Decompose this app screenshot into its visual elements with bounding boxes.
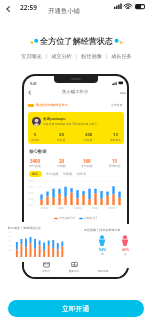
staticText: 支付金额 — [29, 164, 41, 168]
button[interactable]: 工作台 — [42, 261, 50, 272]
staticText: 9:41 — [30, 81, 37, 86]
staticText: 我的店铺 — [98, 269, 109, 272]
staticText: 待发货 — [57, 138, 66, 141]
button[interactable]: 成长任务 — [111, 53, 132, 60]
button[interactable]: Back — [1, 2, 15, 16]
staticText: 退款售后 — [110, 138, 121, 141]
button[interactable]: 概览 — [29, 171, 42, 177]
staticText: 20 — [59, 132, 64, 138]
staticText: 鱼小铺工作台 — [62, 89, 89, 95]
staticText: 工作台 — [42, 269, 50, 272]
staticText: 22:59 — [20, 3, 37, 12]
staticText: 新增粉丝 — [109, 164, 121, 168]
staticText: 支付金额 — [46, 172, 59, 176]
staticText: 待付款 — [31, 138, 40, 141]
staticText: 46% — [122, 247, 129, 252]
staticText: 宝贝曝光 — [21, 53, 42, 60]
staticText: 店铺 优质店铺等级 好评 ( 2件评价等级 好评 ) > — [43, 122, 99, 126]
staticText: 立即查看 — [111, 103, 123, 107]
staticText: 全方位了解经营状态 — [40, 36, 113, 46]
staticText: 开通鱼小铺 — [48, 7, 80, 15]
button[interactable]: 宝贝曝光 — [21, 53, 42, 60]
button[interactable]: 我的店铺 — [98, 261, 109, 272]
staticText: 访客数 — [63, 172, 73, 176]
staticText: 男 — [101, 252, 104, 255]
button[interactable]: 立即开通 — [8, 300, 144, 317]
staticText: 概览 — [32, 172, 39, 176]
staticText: 访客数 (人) — [84, 216, 98, 220]
staticText: 13 — [113, 132, 118, 138]
staticText: 昨日成交 | 明细成交占比 — [8, 226, 42, 230]
staticText: #社交助力#限时任务中 — [36, 103, 68, 107]
staticText: 数据中心 — [69, 269, 80, 272]
staticText: 粉丝画像 | 性别及来源分布 — [84, 228, 121, 232]
staticText: 支付买家 — [81, 164, 93, 168]
button[interactable]: 数据中心 — [69, 261, 80, 272]
staticText: 54% — [99, 247, 106, 252]
staticText: 200 — [85, 132, 93, 138]
staticText: 支付金额 (元) — [59, 216, 75, 220]
staticText: 立即开通 — [62, 304, 90, 313]
staticText: 转化率 — [77, 172, 87, 176]
button[interactable]: 访客数 — [63, 172, 73, 176]
staticText: 女 — [124, 252, 127, 255]
button[interactable]: 成交分析 — [51, 53, 72, 60]
staticText: 访客数 — [57, 164, 66, 168]
button[interactable]: 转化率 — [77, 172, 87, 176]
staticText: 成交分析 — [51, 53, 72, 60]
button[interactable]: 支付金额 — [46, 172, 59, 176]
staticText: 3400 — [30, 158, 41, 164]
staticText: 20 — [59, 158, 65, 164]
staticText: 粉丝画像 — [81, 53, 102, 60]
staticText: 5 — [34, 132, 37, 138]
staticText: 核心数据 — [29, 149, 47, 155]
staticText: 成长任务 — [111, 53, 132, 60]
button[interactable]: 粉丝画像 — [81, 53, 102, 60]
staticText: 15 — [112, 158, 118, 164]
staticText: 已发货 — [84, 138, 93, 141]
staticText: 鱼素yuxiaopu — [43, 116, 66, 121]
staticText: 160 — [83, 158, 91, 164]
